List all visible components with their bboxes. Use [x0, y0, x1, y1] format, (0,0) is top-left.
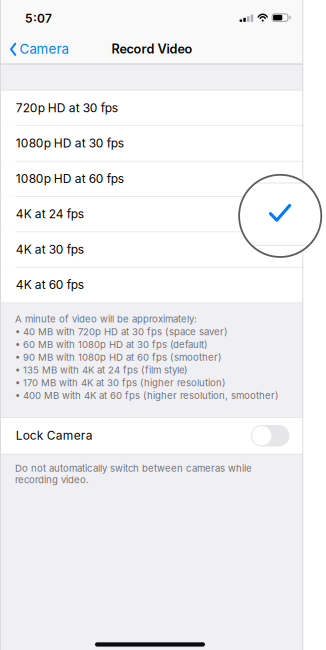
- staticText: 4K at 30 fps: [16, 242, 84, 257]
- button[interactable]: 4K at 60 fps: [1, 267, 303, 303]
- staticText: 720p HD at 30 fps: [16, 101, 118, 115]
- staticText: 1080p HD at 60 fps: [16, 171, 124, 186]
- staticText: 1080p HD at 30 fps: [16, 136, 124, 150]
- staticText: A minute of video will be approximately:: [15, 313, 197, 325]
- staticText: 5:07: [25, 11, 52, 26]
- staticText: • 40 MB with 720p HD at 30 fps (space sa…: [15, 326, 228, 338]
- staticText: 4K at 24 fps: [16, 207, 84, 221]
- button[interactable]: 4K at 30 fps: [1, 232, 303, 267]
- staticText: recording video.: [15, 474, 89, 486]
- button[interactable]: Lock Camera: [1, 418, 303, 454]
- staticText: • 400 MB with 4K at 60 fps (higher resol…: [15, 390, 279, 401]
- staticText: 4K at 60 fps: [16, 277, 84, 292]
- staticText: • 90 MB with 1080p HD at 60 fps (smoothe…: [15, 351, 222, 363]
- staticText: Record Video: [111, 41, 192, 56]
- staticText: • 60 MB with 1080p HD at 30 fps (default…: [15, 339, 208, 350]
- button[interactable]: 4K at 24 fps: [1, 196, 303, 232]
- button[interactable]: 720p HD at 30 fps: [1, 90, 303, 126]
- button[interactable]: 1080p HD at 60 fps: [1, 161, 303, 196]
- staticText: Camera: [19, 41, 68, 57]
- staticText: Do not automatically switch between came…: [15, 462, 252, 474]
- staticText: Lock Camera: [16, 428, 93, 443]
- button[interactable]: 1080p HD at 30 fps: [1, 126, 303, 161]
- staticText: • 170 MB with 4K at 30 fps (higher resol…: [15, 377, 226, 389]
- button[interactable]: Lock Camera: [251, 425, 289, 446]
- staticText: • 135 MB with 4K at 24 fps (film style): [15, 364, 188, 376]
- button[interactable]: Camera: [1, 35, 76, 63]
